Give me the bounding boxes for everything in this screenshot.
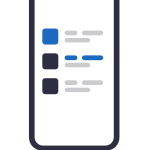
button[interactable]: List item 1 <box>42 28 103 44</box>
button[interactable]: List item 3 <box>42 78 103 94</box>
button[interactable]: List item 2 <box>42 53 103 69</box>
